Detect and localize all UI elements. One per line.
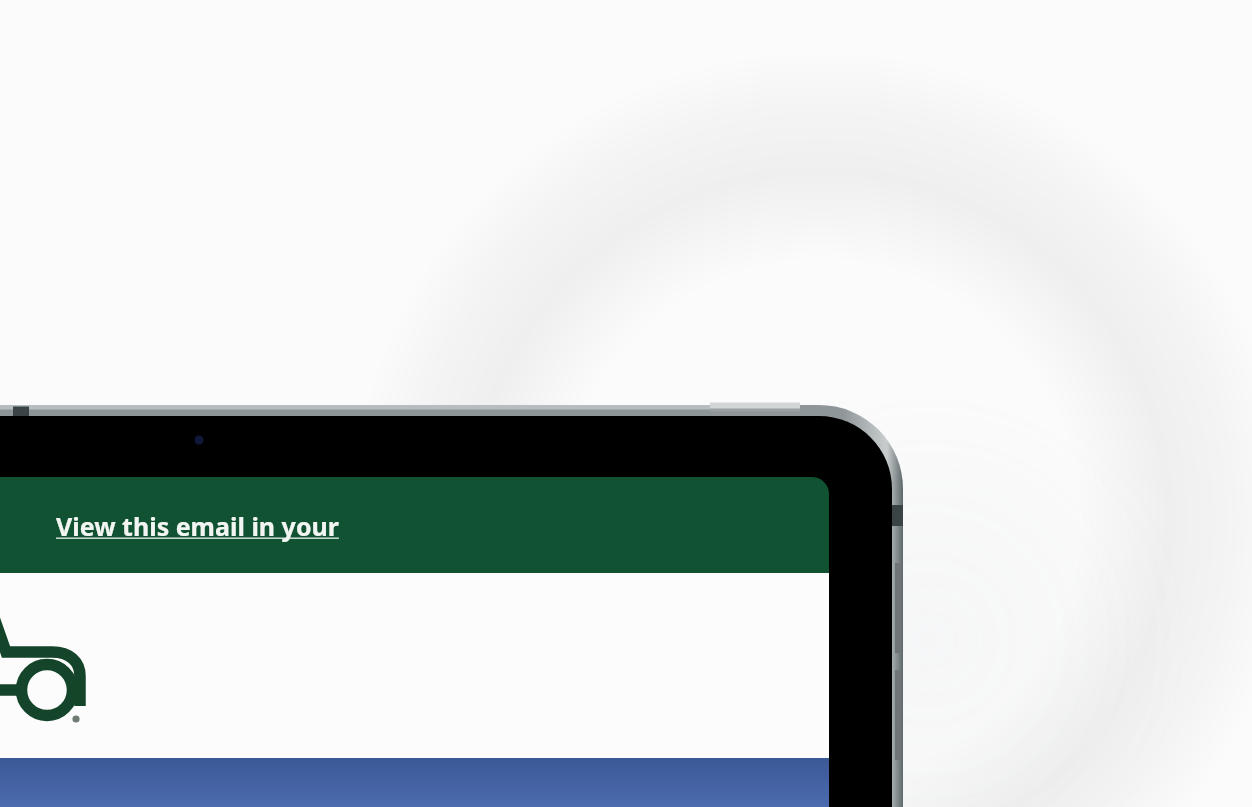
staticText: View this email in your browser [56, 509, 348, 543]
button[interactable]: Company logo [0, 600, 96, 740]
button[interactable]: View this email in your browser [56, 509, 348, 543]
